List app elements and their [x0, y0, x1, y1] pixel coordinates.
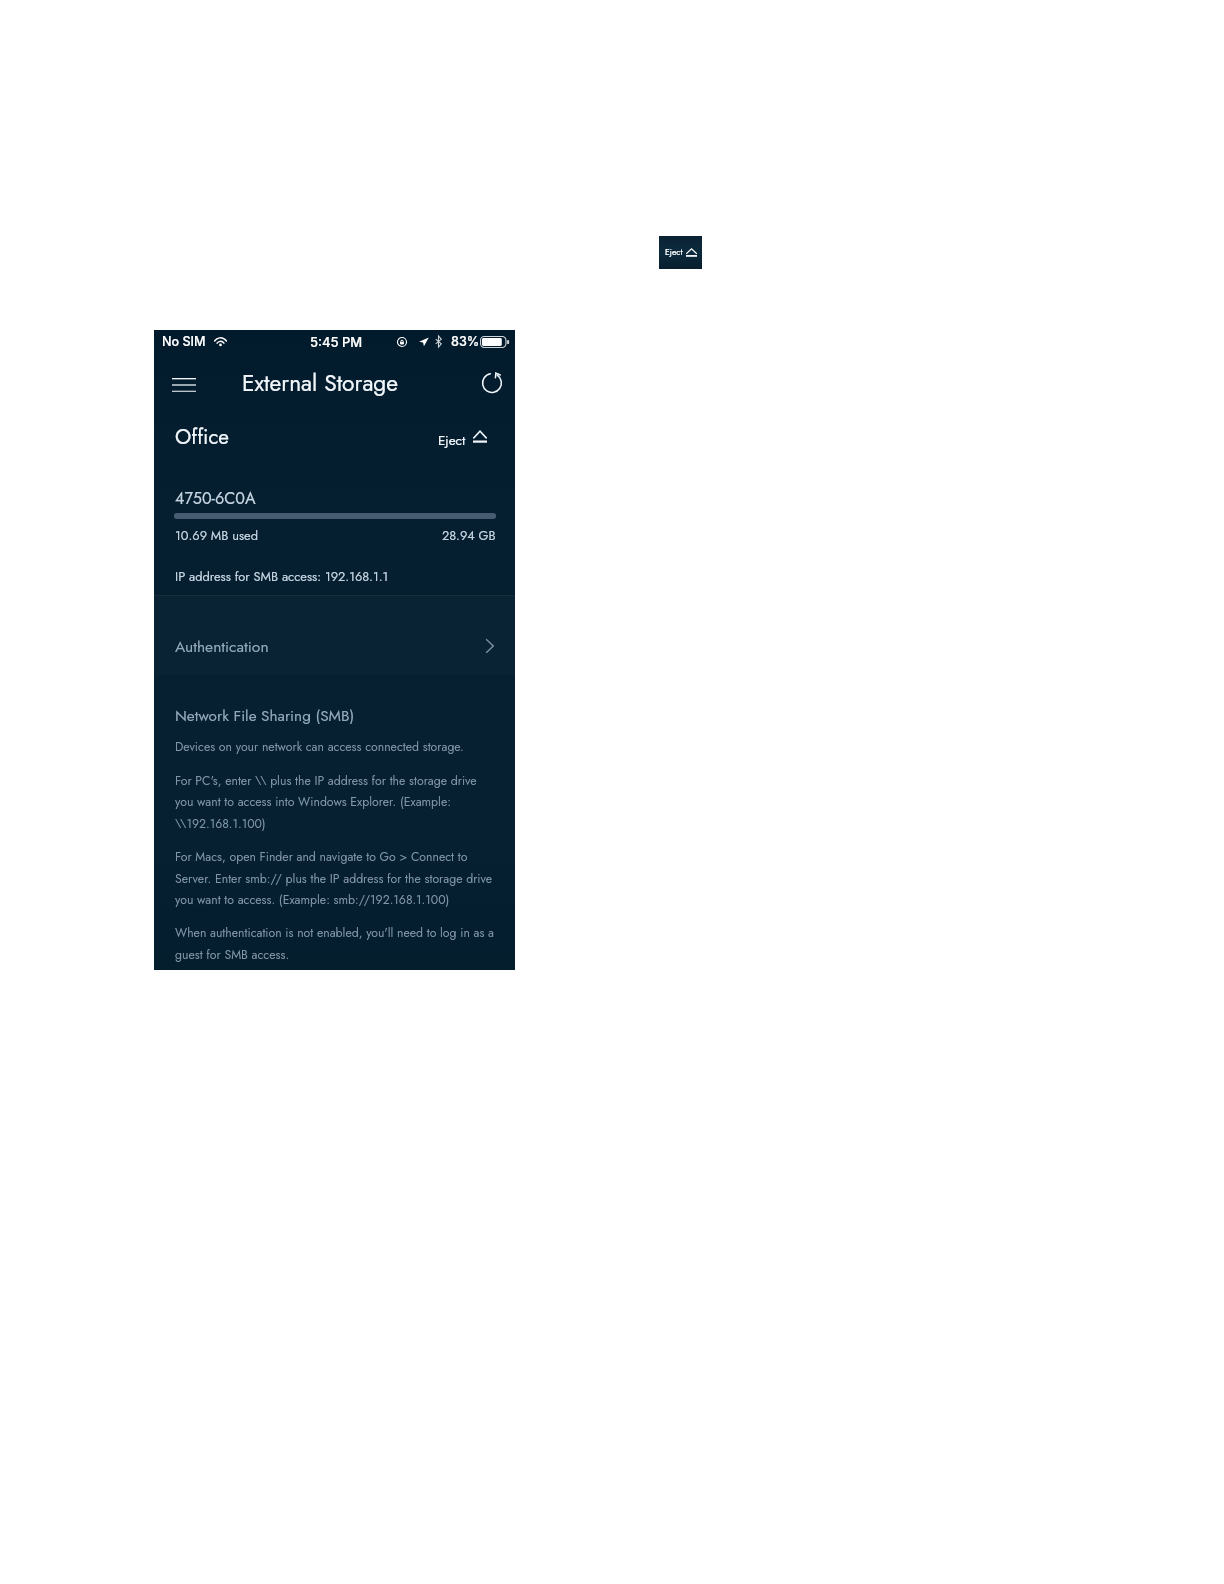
staticText: No SIM	[162, 334, 206, 349]
staticText: Devices on your network can access conne…	[175, 738, 515, 756]
button[interactable]: Authentication	[154, 595, 515, 675]
staticText: Office	[175, 422, 229, 452]
button[interactable]: Eject	[659, 236, 702, 269]
staticText: Eject	[438, 431, 466, 450]
staticText: 83%	[451, 334, 480, 349]
staticText: For Macs, open Finder and navigate to Go…	[175, 848, 515, 866]
staticText: \\192.168.1.100)	[175, 815, 515, 833]
staticText: Network File Sharing (SMB)	[175, 705, 355, 727]
staticText: When authentication is not enabled, you'…	[175, 924, 515, 942]
button[interactable]: Open navigation menu	[160, 365, 208, 405]
staticText: 28.94 GB	[442, 526, 496, 544]
button[interactable]: Eject	[438, 425, 487, 449]
staticText: Eject	[665, 246, 683, 258]
staticText: Server. Enter smb:// plus the IP address…	[175, 870, 515, 888]
staticText: 5:45 PM	[310, 334, 363, 350]
staticText: 4750-6C0A	[175, 487, 256, 510]
staticText: you want to access into Windows Explorer…	[175, 793, 515, 811]
staticText: For PC's, enter \\ plus the IP address f…	[175, 772, 515, 790]
staticText: IP address for SMB access: 192.168.1.1	[175, 567, 389, 585]
staticText: 10.69 MB used	[175, 526, 258, 544]
staticText: Authentication	[175, 635, 269, 658]
staticText: External Storage	[242, 367, 399, 400]
button[interactable]: Refresh	[468, 363, 516, 403]
staticText: you want to access. (Example: smb://192.…	[175, 891, 515, 909]
staticText: guest for SMB access.	[175, 946, 515, 964]
